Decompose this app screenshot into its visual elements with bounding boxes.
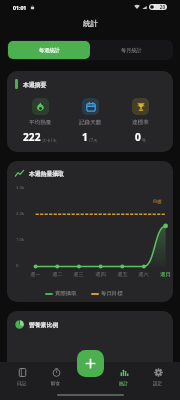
staticText: 1.0k [16,237,25,243]
staticText: 斷食 [51,381,61,387]
button[interactable]: 每月統計 [90,41,172,59]
staticText: 週三 [73,271,84,277]
staticText: 1 [82,130,88,144]
staticText: 每週統計 [39,47,60,54]
staticText: 週五 [117,271,128,277]
button[interactable]: 斷食 [39,362,73,400]
staticText: 週六 [138,271,149,277]
staticText: 本週摘要 [23,81,47,88]
staticText: 週一 [30,271,41,277]
button[interactable]: Add entry [77,350,104,377]
button[interactable]: 每週統計 [8,41,90,59]
staticText: 統計 [83,19,98,28]
staticText: 週日 [160,271,171,277]
staticText: /7天 [89,137,98,143]
staticText: 實際攝取 [55,290,77,297]
staticText: 目標 [153,199,162,204]
staticText: % [142,137,146,143]
staticText: 日記 [17,381,27,387]
staticText: 設定 [153,381,163,387]
staticText: 01:01 [13,4,27,11]
staticText: 大卡/天 [42,137,57,143]
staticText: 本週熱量攝取 [29,170,64,177]
staticText: 20 [149,4,165,10]
staticText: 0 [16,263,19,269]
button[interactable]: 設定 [141,362,175,400]
staticText: 2.0k [16,211,25,217]
staticText: 統計 [119,381,129,387]
button[interactable]: 統計 [107,362,141,400]
staticText: 週四 [95,271,106,277]
staticText: 記錄天數 [79,119,102,126]
button[interactable]: 日記 [5,362,39,400]
staticText: 每月統計 [121,47,142,54]
staticText: 222 [23,130,41,144]
staticText: 3.0k [16,185,25,191]
staticText: 0 [135,130,141,144]
staticText: 每日目標 [101,290,123,297]
staticText: 達標率 [132,119,149,126]
staticText: 週二 [52,271,63,277]
staticText: 營養素比例 [29,321,58,328]
staticText: 平均熱量 [29,119,52,126]
